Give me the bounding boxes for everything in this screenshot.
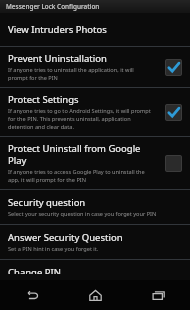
staticText: If anyone tries to go to Android Setting… [8, 107, 151, 115]
button[interactable]: Answer Security Question [0, 225, 190, 259]
staticText: Answer Security Question [8, 231, 123, 244]
button[interactable]: View Intruders Photos [0, 13, 190, 46]
button[interactable]: Protect Uninstall from Google Play [0, 137, 190, 189]
staticText: for the PIN. This prevents uninstall, ap… [8, 115, 131, 123]
staticText: detention and clear data. [8, 123, 74, 131]
staticText: If anyone tries to access Google Play to… [8, 168, 145, 176]
staticText: Protect Settings [8, 93, 79, 106]
staticText: prompt for the PIN [8, 74, 58, 82]
button[interactable]: Protect Settings [0, 88, 190, 136]
button[interactable]: Change PIN [0, 260, 190, 280]
button[interactable]: Security question [0, 190, 190, 224]
staticText: Security question [8, 196, 86, 209]
button[interactable]: Home [64, 280, 127, 310]
button[interactable]: Prevent Uninstallation [0, 47, 190, 87]
staticText: If anyone tries to uninstall the applica… [8, 66, 134, 74]
staticText: Select your security question in case yo… [8, 210, 157, 218]
staticText: Prevent Uninstallation [8, 52, 107, 65]
staticText: app, it will prompt for the PIN [8, 176, 86, 184]
staticText: Protect Uninstall from Google Play [8, 142, 161, 167]
staticText: Set a PIN hint in case you forget it. [8, 245, 99, 253]
staticText: Change PIN [8, 266, 61, 274]
staticText: Messenger Lock Configuration [6, 2, 100, 11]
button[interactable]: Recents [127, 280, 190, 310]
staticText: View Intruders Photos [8, 23, 107, 36]
button[interactable]: Back [0, 280, 64, 310]
